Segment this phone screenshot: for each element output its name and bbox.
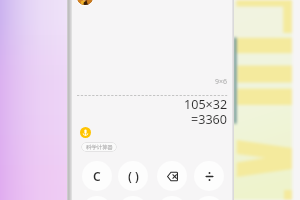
staticText: =3360 bbox=[191, 111, 228, 128]
button[interactable] bbox=[194, 196, 224, 200]
button[interactable] bbox=[82, 196, 112, 200]
staticText: C bbox=[93, 168, 101, 184]
button[interactable] bbox=[157, 196, 187, 200]
button[interactable]: ( ) bbox=[118, 161, 148, 191]
staticText: 9×6 bbox=[215, 77, 228, 87]
button[interactable] bbox=[118, 196, 148, 200]
button[interactable]: 科学计算器 bbox=[81, 142, 117, 152]
staticText: ( ) bbox=[128, 168, 139, 184]
button[interactable] bbox=[194, 161, 224, 191]
button[interactable]: Backspace bbox=[157, 161, 187, 191]
staticText: 科学计算器 bbox=[86, 144, 113, 151]
button[interactable]: Recipe card bbox=[76, 0, 94, 6]
button[interactable]: Voice input bbox=[80, 127, 91, 138]
button[interactable]: C bbox=[82, 161, 112, 191]
staticText: 105×32 bbox=[184, 96, 228, 113]
